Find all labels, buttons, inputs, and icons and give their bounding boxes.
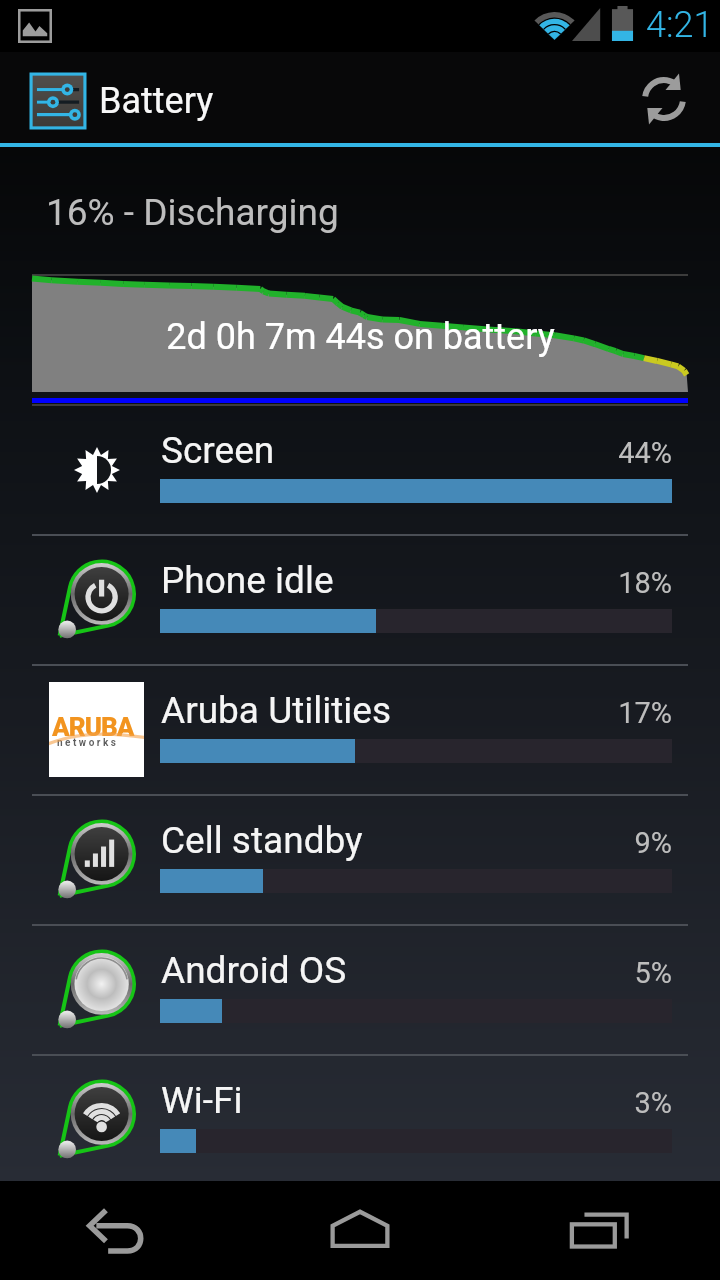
staticText: 17% bbox=[472, 696, 672, 730]
staticText: 18% bbox=[472, 566, 672, 600]
staticText: 44% bbox=[472, 436, 672, 470]
staticText: 9% bbox=[472, 826, 672, 860]
button[interactable]: Back bbox=[0, 1181, 240, 1280]
button[interactable]: Phone idle bbox=[0, 534, 720, 664]
staticText: ARUBA bbox=[52, 712, 134, 742]
staticText: Wi-Fi bbox=[161, 1079, 243, 1122]
staticText: Phone idle bbox=[161, 559, 334, 602]
staticText: Aruba Utilities bbox=[161, 689, 392, 732]
staticText: 2d 0h 7m 44s on battery bbox=[166, 316, 555, 358]
staticText: Screen bbox=[161, 429, 275, 472]
staticText: Android OS bbox=[161, 949, 347, 992]
staticText: 16% - Discharging bbox=[46, 191, 339, 234]
button[interactable]: Screen bbox=[0, 404, 720, 534]
button[interactable]: ARUBA bbox=[0, 664, 720, 794]
staticText: 4:21 bbox=[646, 4, 714, 46]
staticText: Cell standby bbox=[161, 819, 363, 862]
button[interactable]: Recent apps bbox=[480, 1181, 720, 1280]
staticText: 5% bbox=[472, 956, 672, 990]
button[interactable]: Refresh bbox=[625, 60, 703, 138]
button[interactable]: Android OS bbox=[0, 924, 720, 1054]
staticText: 3% bbox=[472, 1086, 672, 1120]
button[interactable]: Cell standby bbox=[0, 794, 720, 924]
button[interactable]: Home bbox=[240, 1181, 480, 1280]
staticText: Battery bbox=[99, 80, 214, 122]
button[interactable]: Wi-Fi bbox=[0, 1054, 720, 1184]
staticText: n e t w o r k s bbox=[57, 737, 116, 749]
